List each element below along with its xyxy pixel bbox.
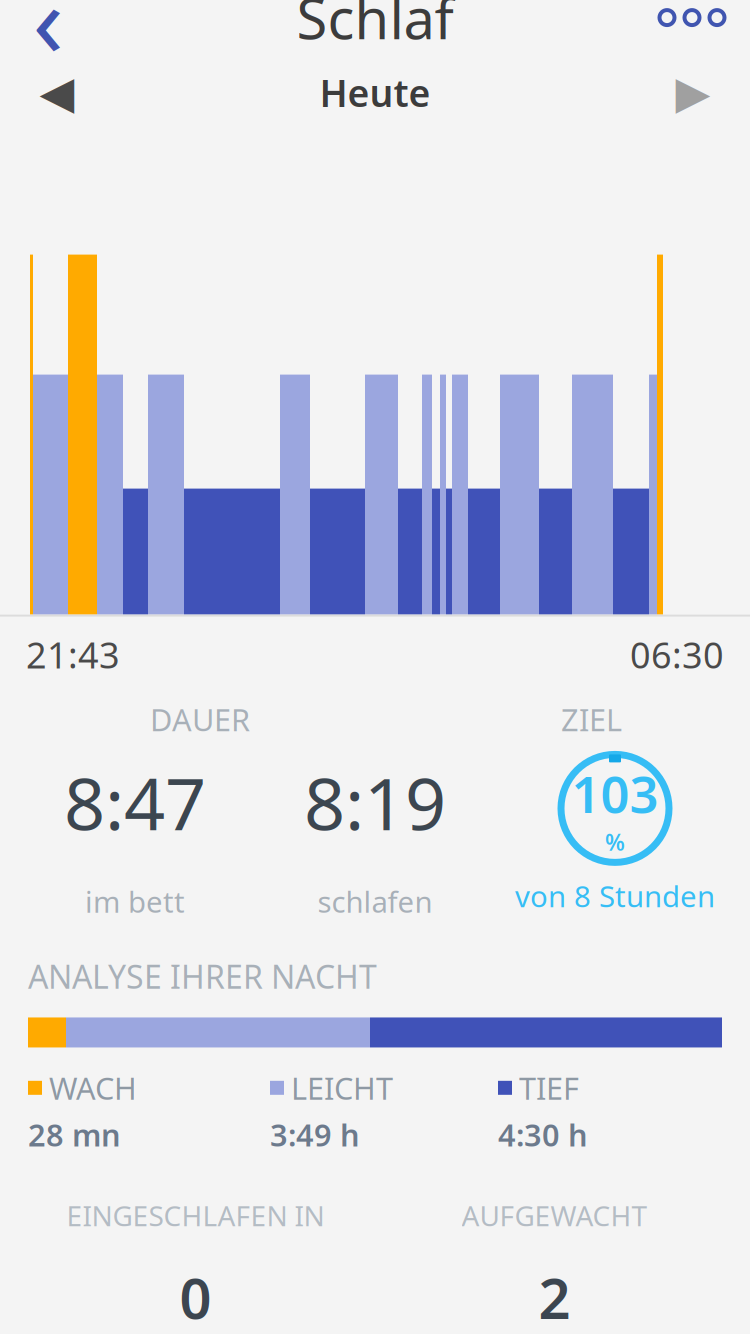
- staticText: 0: [179, 1260, 211, 1334]
- button[interactable]: More options: [644, 0, 740, 61]
- staticText: 103: [571, 760, 658, 827]
- staticText: schlafen: [317, 882, 432, 921]
- button[interactable]: Next day: [648, 61, 738, 125]
- staticText: 21:43: [26, 631, 120, 678]
- staticText: WACH: [49, 1067, 137, 1108]
- staticText: 3:49 h: [270, 1114, 360, 1155]
- staticText: %: [605, 827, 625, 857]
- staticText: ANALYSE IHRER NACHT: [28, 955, 377, 997]
- staticText: ◀: [39, 67, 74, 118]
- staticText: Schlaf: [296, 0, 453, 55]
- staticText: Heute: [319, 68, 430, 117]
- staticText: ZIEL: [561, 699, 622, 740]
- staticText: EINGESCHLAFEN IN: [66, 1197, 324, 1234]
- staticText: von 8 Stunden: [515, 876, 715, 915]
- staticText: LEICHT: [291, 1067, 393, 1108]
- staticText: 8:19: [304, 754, 446, 850]
- button[interactable]: Back: [10, 0, 86, 61]
- button[interactable]: Previous day: [12, 61, 102, 125]
- staticText: ▶: [675, 67, 710, 118]
- staticText: 4:30 h: [498, 1114, 588, 1155]
- staticText: 8:47: [64, 754, 206, 850]
- staticText: im bett: [85, 882, 185, 921]
- staticText: 2: [538, 1260, 570, 1334]
- staticText: ‹: [32, 0, 63, 85]
- staticText: 06:30: [630, 631, 724, 678]
- staticText: DAUER: [150, 699, 250, 740]
- staticText: AUFGEWACHT: [461, 1197, 647, 1234]
- staticText: 28 mn: [28, 1114, 121, 1155]
- staticText: TIEF: [519, 1067, 579, 1108]
